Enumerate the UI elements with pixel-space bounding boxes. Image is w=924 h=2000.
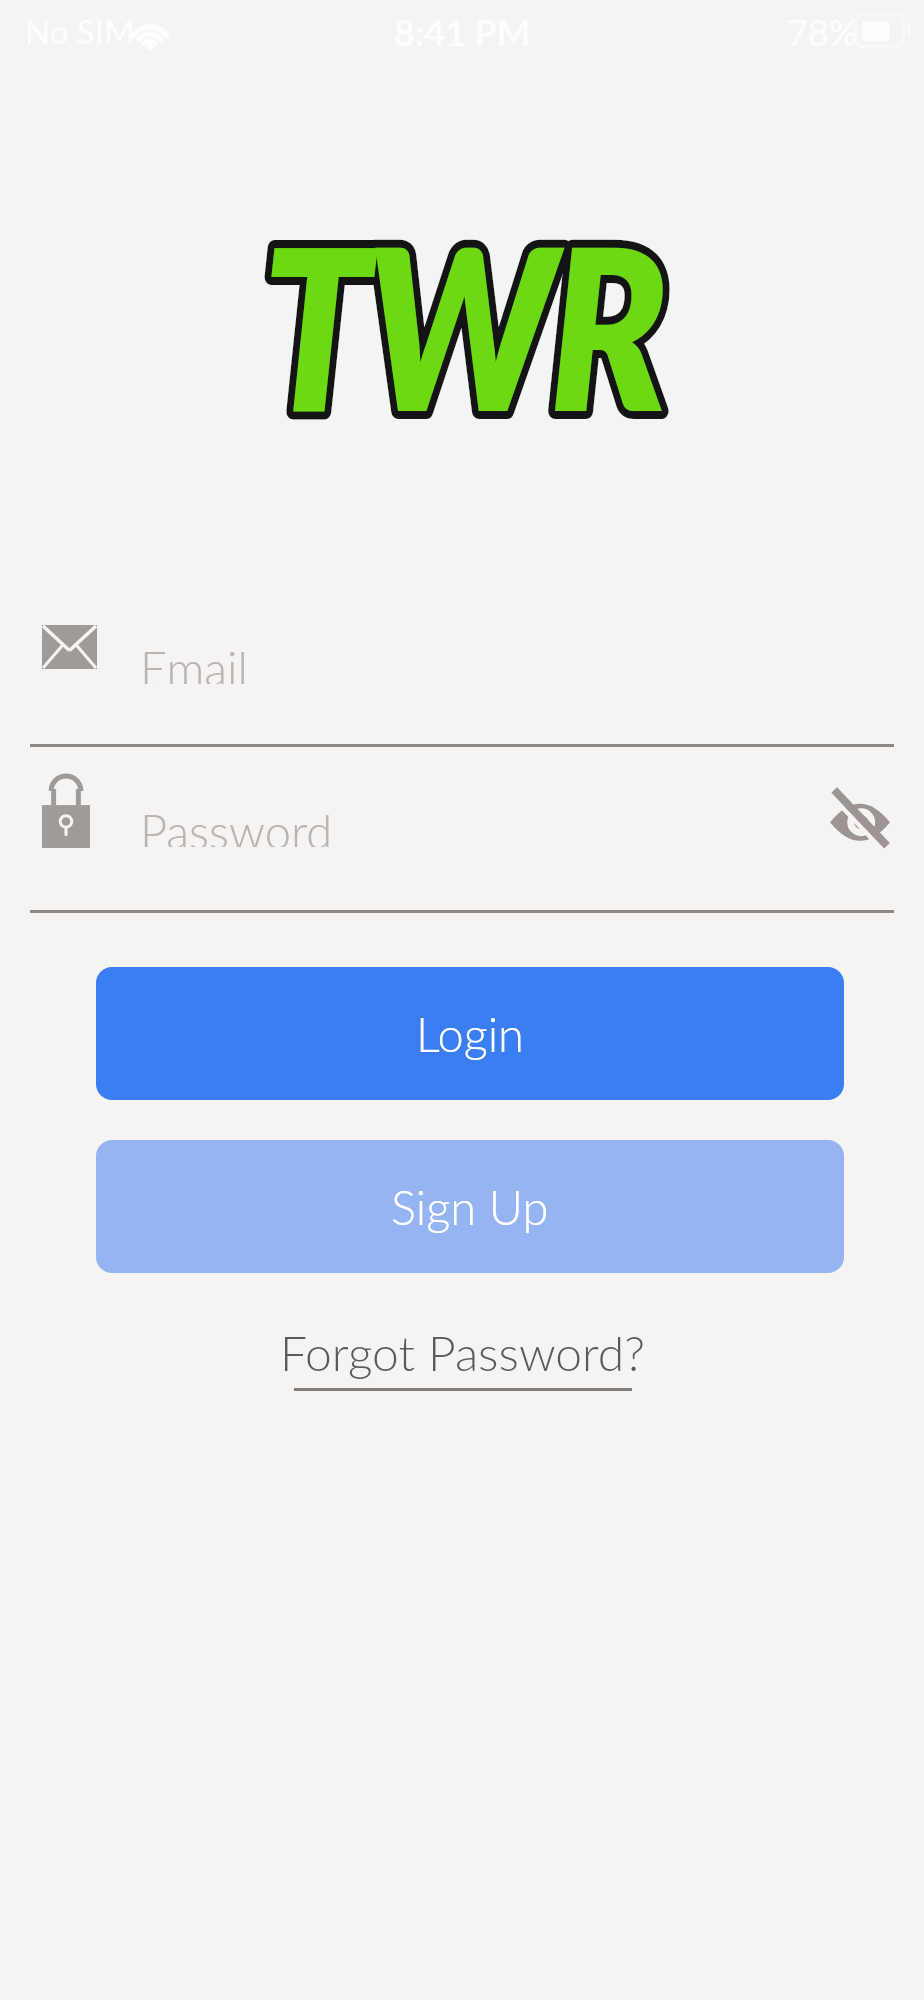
staticText: 78% (787, 10, 858, 53)
staticText: 8:41 PM (394, 10, 531, 53)
staticText: No SIM (25, 11, 135, 51)
button[interactable]: Login (96, 967, 844, 1100)
staticText: TWR (262, 190, 663, 459)
button[interactable]: Forgot Password? (280, 1324, 645, 1391)
staticText: Sign Up (391, 1179, 549, 1235)
button[interactable]: Email (0, 640, 924, 684)
staticText: Login (416, 1006, 524, 1062)
staticText: Forgot Password? (280, 1324, 645, 1382)
button[interactable] (830, 790, 890, 852)
staticText: Email (140, 640, 248, 684)
button[interactable]: Sign Up (96, 1140, 844, 1273)
staticText: TWR (262, 190, 663, 459)
staticText: Password (140, 803, 333, 847)
button[interactable]: Password (0, 803, 924, 847)
